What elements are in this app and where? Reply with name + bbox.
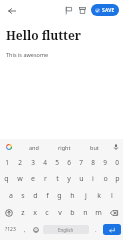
staticText: u [79, 174, 84, 184]
staticText: , [24, 226, 26, 234]
staticText: 1 [5, 158, 9, 167]
button[interactable]: m [92, 204, 105, 221]
staticText: q [4, 174, 9, 184]
button[interactable]: s [17, 187, 29, 204]
button[interactable]: k [92, 187, 105, 204]
staticText: c [45, 208, 49, 218]
button[interactable]: l [105, 187, 118, 204]
button[interactable]: q [0, 170, 13, 187]
staticText: 3 [31, 158, 35, 167]
button[interactable]: 8 [87, 155, 99, 170]
staticText: b [70, 208, 75, 218]
staticText: w [17, 174, 23, 184]
button[interactable]: 7 [75, 155, 87, 170]
staticText: and [29, 144, 39, 151]
staticText: y [67, 174, 71, 184]
button[interactable]: j [79, 187, 92, 204]
staticText: This is awesome [6, 51, 49, 58]
staticText: 9 [103, 158, 107, 167]
button[interactable]: n [79, 204, 92, 221]
staticText: 2 [18, 158, 22, 167]
button[interactable]: . [91, 221, 101, 238]
button[interactable]: o [99, 170, 111, 187]
staticText: r [44, 174, 47, 184]
staticText: e [31, 174, 35, 184]
staticText: j [85, 191, 87, 201]
button[interactable]: y [63, 170, 75, 187]
button[interactable]: Emoji [30, 221, 41, 238]
button[interactable]: a [5, 187, 17, 204]
staticText: 5 [55, 158, 59, 167]
button[interactable]: x [29, 204, 41, 221]
button[interactable]: Voice input [109, 139, 123, 155]
button[interactable]: 4 [39, 155, 51, 170]
staticText: SAVE [102, 7, 115, 14]
staticText: d [33, 191, 38, 201]
button[interactable]: Google [0, 139, 18, 155]
staticText: i [92, 174, 94, 184]
button[interactable]: 5 [51, 155, 63, 170]
button[interactable]: c [41, 204, 53, 221]
button[interactable]: Backspace [105, 204, 123, 221]
staticText: z [21, 208, 25, 218]
button[interactable]: r [39, 170, 51, 187]
staticText: v [58, 208, 62, 218]
button[interactable]: b [66, 204, 79, 221]
button[interactable]: Archive [76, 4, 89, 17]
staticText: 0 [115, 158, 119, 167]
button[interactable]: g [53, 187, 66, 204]
staticText: English [58, 227, 74, 233]
staticText: . [95, 226, 97, 234]
staticText: 6 [67, 158, 71, 167]
button[interactable]: d [29, 187, 41, 204]
button[interactable]: , [20, 221, 30, 238]
button[interactable]: Back [4, 3, 19, 18]
staticText: ?123 [5, 226, 16, 233]
button[interactable]: w [13, 170, 26, 187]
button[interactable]: 1 [0, 155, 13, 170]
button[interactable]: t [51, 170, 63, 187]
staticText: Hello flutter [6, 27, 82, 43]
staticText: a [9, 191, 13, 201]
button[interactable]: 3 [26, 155, 39, 170]
staticText: h [70, 191, 75, 201]
button[interactable]: Flag [62, 4, 75, 17]
button[interactable]: Enter [103, 224, 121, 235]
button[interactable]: English [43, 225, 89, 234]
button[interactable]: ?123 [0, 221, 20, 238]
button[interactable]: right [49, 139, 79, 155]
staticText: g [57, 191, 62, 201]
button[interactable]: but [79, 139, 109, 155]
button[interactable]: f [41, 187, 53, 204]
staticText: n [83, 208, 88, 218]
button[interactable]: z [17, 204, 29, 221]
button[interactable]: i [87, 170, 99, 187]
staticText: s [21, 191, 25, 201]
staticText: o [103, 174, 108, 184]
staticText: f [46, 191, 49, 201]
button[interactable]: e [26, 170, 39, 187]
staticText: right [58, 144, 71, 151]
staticText: but [90, 144, 99, 151]
staticText: m [95, 208, 102, 218]
staticText: t [56, 174, 59, 184]
staticText: x [33, 208, 37, 218]
button[interactable]: u [75, 170, 87, 187]
staticText: k [97, 191, 101, 201]
staticText: p [115, 174, 120, 184]
button[interactable]: h [66, 187, 79, 204]
staticText: 7 [79, 158, 83, 167]
button[interactable]: 0 [111, 155, 123, 170]
button[interactable]: 9 [99, 155, 111, 170]
staticText: 4 [43, 158, 47, 167]
staticText: 8 [91, 158, 95, 167]
button[interactable]: p [111, 170, 123, 187]
button[interactable]: v [53, 204, 66, 221]
staticText: l [111, 191, 113, 201]
button[interactable]: 2 [13, 155, 26, 170]
button[interactable]: Shift [0, 204, 17, 221]
button[interactable]: 6 [63, 155, 75, 170]
button[interactable]: SAVE [91, 4, 119, 16]
button[interactable]: and [18, 139, 49, 155]
